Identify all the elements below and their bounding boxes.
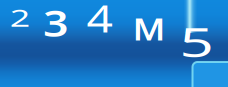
staticText: 5: [185, 15, 208, 68]
staticText: м: [133, 0, 165, 51]
staticText: 2: [13, 3, 26, 33]
staticText: 4: [89, 0, 110, 43]
staticText: 3: [45, 0, 66, 47]
